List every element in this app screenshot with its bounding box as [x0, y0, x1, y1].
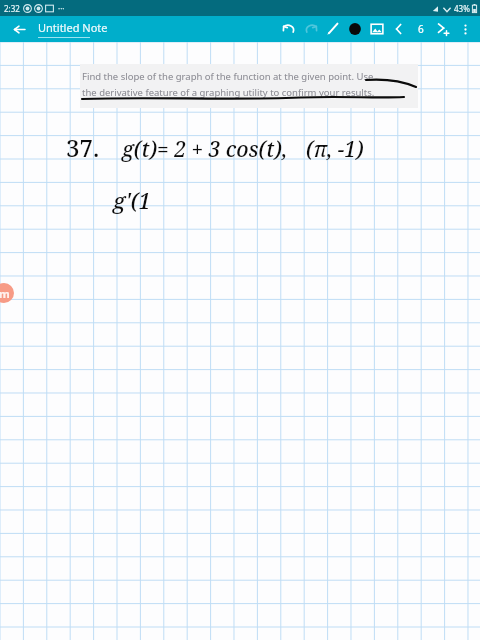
button[interactable]: Back [8, 18, 30, 40]
button[interactable]: Undo [278, 18, 300, 40]
staticText: the derivative feature of a graphing uti… [82, 86, 375, 99]
button[interactable]: More options [454, 18, 476, 40]
button[interactable]: Untitled Note [38, 20, 108, 38]
staticText: g(t)= 2 + 3 cos(t), [122, 135, 288, 164]
staticText: 43% [454, 3, 470, 14]
button[interactable]: Mathway [0, 283, 14, 303]
staticText: g'(1 [113, 185, 151, 215]
button[interactable]: Add page [432, 18, 454, 40]
button[interactable]: Pen [322, 18, 344, 40]
staticText: 6 [418, 22, 424, 36]
button[interactable]: Redo [300, 18, 322, 40]
staticText: 2:32 [4, 3, 20, 14]
staticText: (π, -1) [306, 135, 364, 164]
staticText: 37. [66, 131, 100, 164]
button[interactable]: Previous page [388, 18, 410, 40]
staticText: ··· [58, 3, 65, 14]
staticText: Untitled Note [38, 20, 108, 35]
button[interactable]: 6 [410, 18, 432, 40]
button[interactable]: Color [344, 18, 366, 40]
button[interactable]: Insert image [366, 18, 388, 40]
staticText: m [0, 286, 10, 301]
staticText: Find the slope of the graph of the funct… [82, 70, 374, 83]
